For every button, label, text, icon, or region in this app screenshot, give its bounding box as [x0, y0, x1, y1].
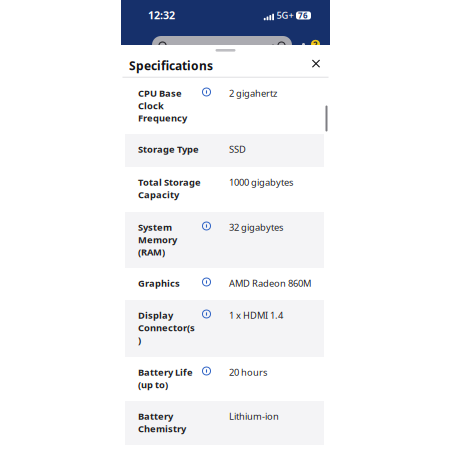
button[interactable]: Search: [152, 36, 292, 56]
staticText: AMD Radeon 860M: [229, 277, 311, 289]
staticText: SSD: [229, 143, 246, 155]
staticText: 2: [313, 39, 318, 50]
staticText: Graphics: [138, 277, 180, 289]
staticText: 1 x HDMI 1.4: [229, 309, 283, 321]
staticText: Battery Chemistry: [138, 410, 186, 435]
staticText: CPU Base Clock Frequency: [138, 87, 187, 124]
staticText: Lithium-ion: [229, 410, 279, 422]
staticText: 1000 gigabytes: [229, 176, 293, 188]
button[interactable]: Close: [306, 56, 326, 76]
staticText: Battery Life (up to): [138, 366, 193, 391]
staticText: Display Connector(s ): [138, 309, 195, 346]
staticText: 12:32: [148, 8, 175, 22]
staticText: 20 hours: [229, 366, 267, 378]
staticText: 76: [298, 10, 308, 21]
staticText: 5G+: [276, 9, 293, 21]
staticText: Specifications: [129, 58, 213, 73]
staticText: Total Storage Capacity: [138, 176, 201, 201]
staticText: 32 gigabytes: [229, 221, 283, 233]
staticText: Storage Type: [138, 143, 199, 155]
staticText: System Memory (RAM): [138, 221, 177, 258]
staticText: 2 gigahertz: [229, 87, 277, 99]
